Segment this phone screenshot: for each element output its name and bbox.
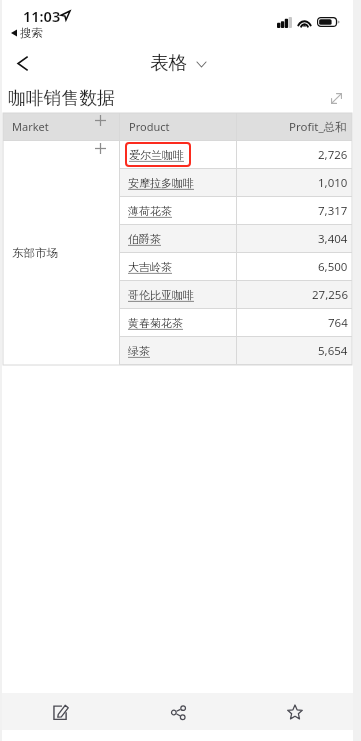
staticText: 大吉岭茶 xyxy=(128,260,172,274)
staticText: 5,654 xyxy=(318,343,348,359)
staticText: 绿茶 xyxy=(128,344,150,358)
staticText: 764 xyxy=(328,315,348,331)
button[interactable]: Expand xyxy=(325,87,347,109)
button[interactable]: Share xyxy=(152,694,204,730)
staticText: 7,317 xyxy=(318,203,348,219)
staticText: 伯爵茶 xyxy=(128,232,161,246)
button[interactable]: 表格 xyxy=(150,51,187,74)
button[interactable]: 东部市场 xyxy=(3,141,119,365)
staticText: 11:03 xyxy=(23,6,61,26)
staticText: 搜索 xyxy=(20,26,43,40)
button[interactable]: 大吉岭茶 xyxy=(120,253,352,280)
staticText: 6,500 xyxy=(318,259,348,275)
staticText: 黄春菊花茶 xyxy=(128,316,183,330)
staticText: 1,010 xyxy=(318,175,348,191)
button[interactable]: 薄荷花茶 xyxy=(120,197,352,224)
staticText: 哥伦比亚咖啡 xyxy=(128,288,194,302)
staticText: 27,256 xyxy=(312,287,348,303)
staticText: 2,726 xyxy=(318,147,348,163)
button[interactable]: Edit xyxy=(35,694,87,730)
staticText: Market xyxy=(12,119,49,134)
button[interactable]: 伯爵茶 xyxy=(120,225,352,252)
staticText: 咖啡销售数据 xyxy=(8,87,115,109)
button[interactable]: 绿茶 xyxy=(120,337,352,364)
staticText: Profit_总和 xyxy=(289,119,347,135)
staticText: 薄荷花茶 xyxy=(128,204,172,218)
button[interactable]: Back xyxy=(7,48,37,78)
button[interactable]: 安摩拉多咖啡 xyxy=(120,169,352,196)
staticText: 3,404 xyxy=(318,231,348,247)
button[interactable]: 黄春菊花茶 xyxy=(120,309,352,336)
button[interactable]: Favorite xyxy=(269,694,321,730)
button[interactable]: 哥伦比亚咖啡 xyxy=(120,281,352,308)
staticText: 爱尔兰咖啡 xyxy=(129,148,184,162)
staticText: 安摩拉多咖啡 xyxy=(128,176,194,190)
staticText: 东部市场 xyxy=(12,246,58,260)
staticText: Product xyxy=(129,119,170,134)
button[interactable]: 爱尔兰咖啡 xyxy=(120,141,352,168)
button[interactable]: 搜索 xyxy=(11,26,43,40)
